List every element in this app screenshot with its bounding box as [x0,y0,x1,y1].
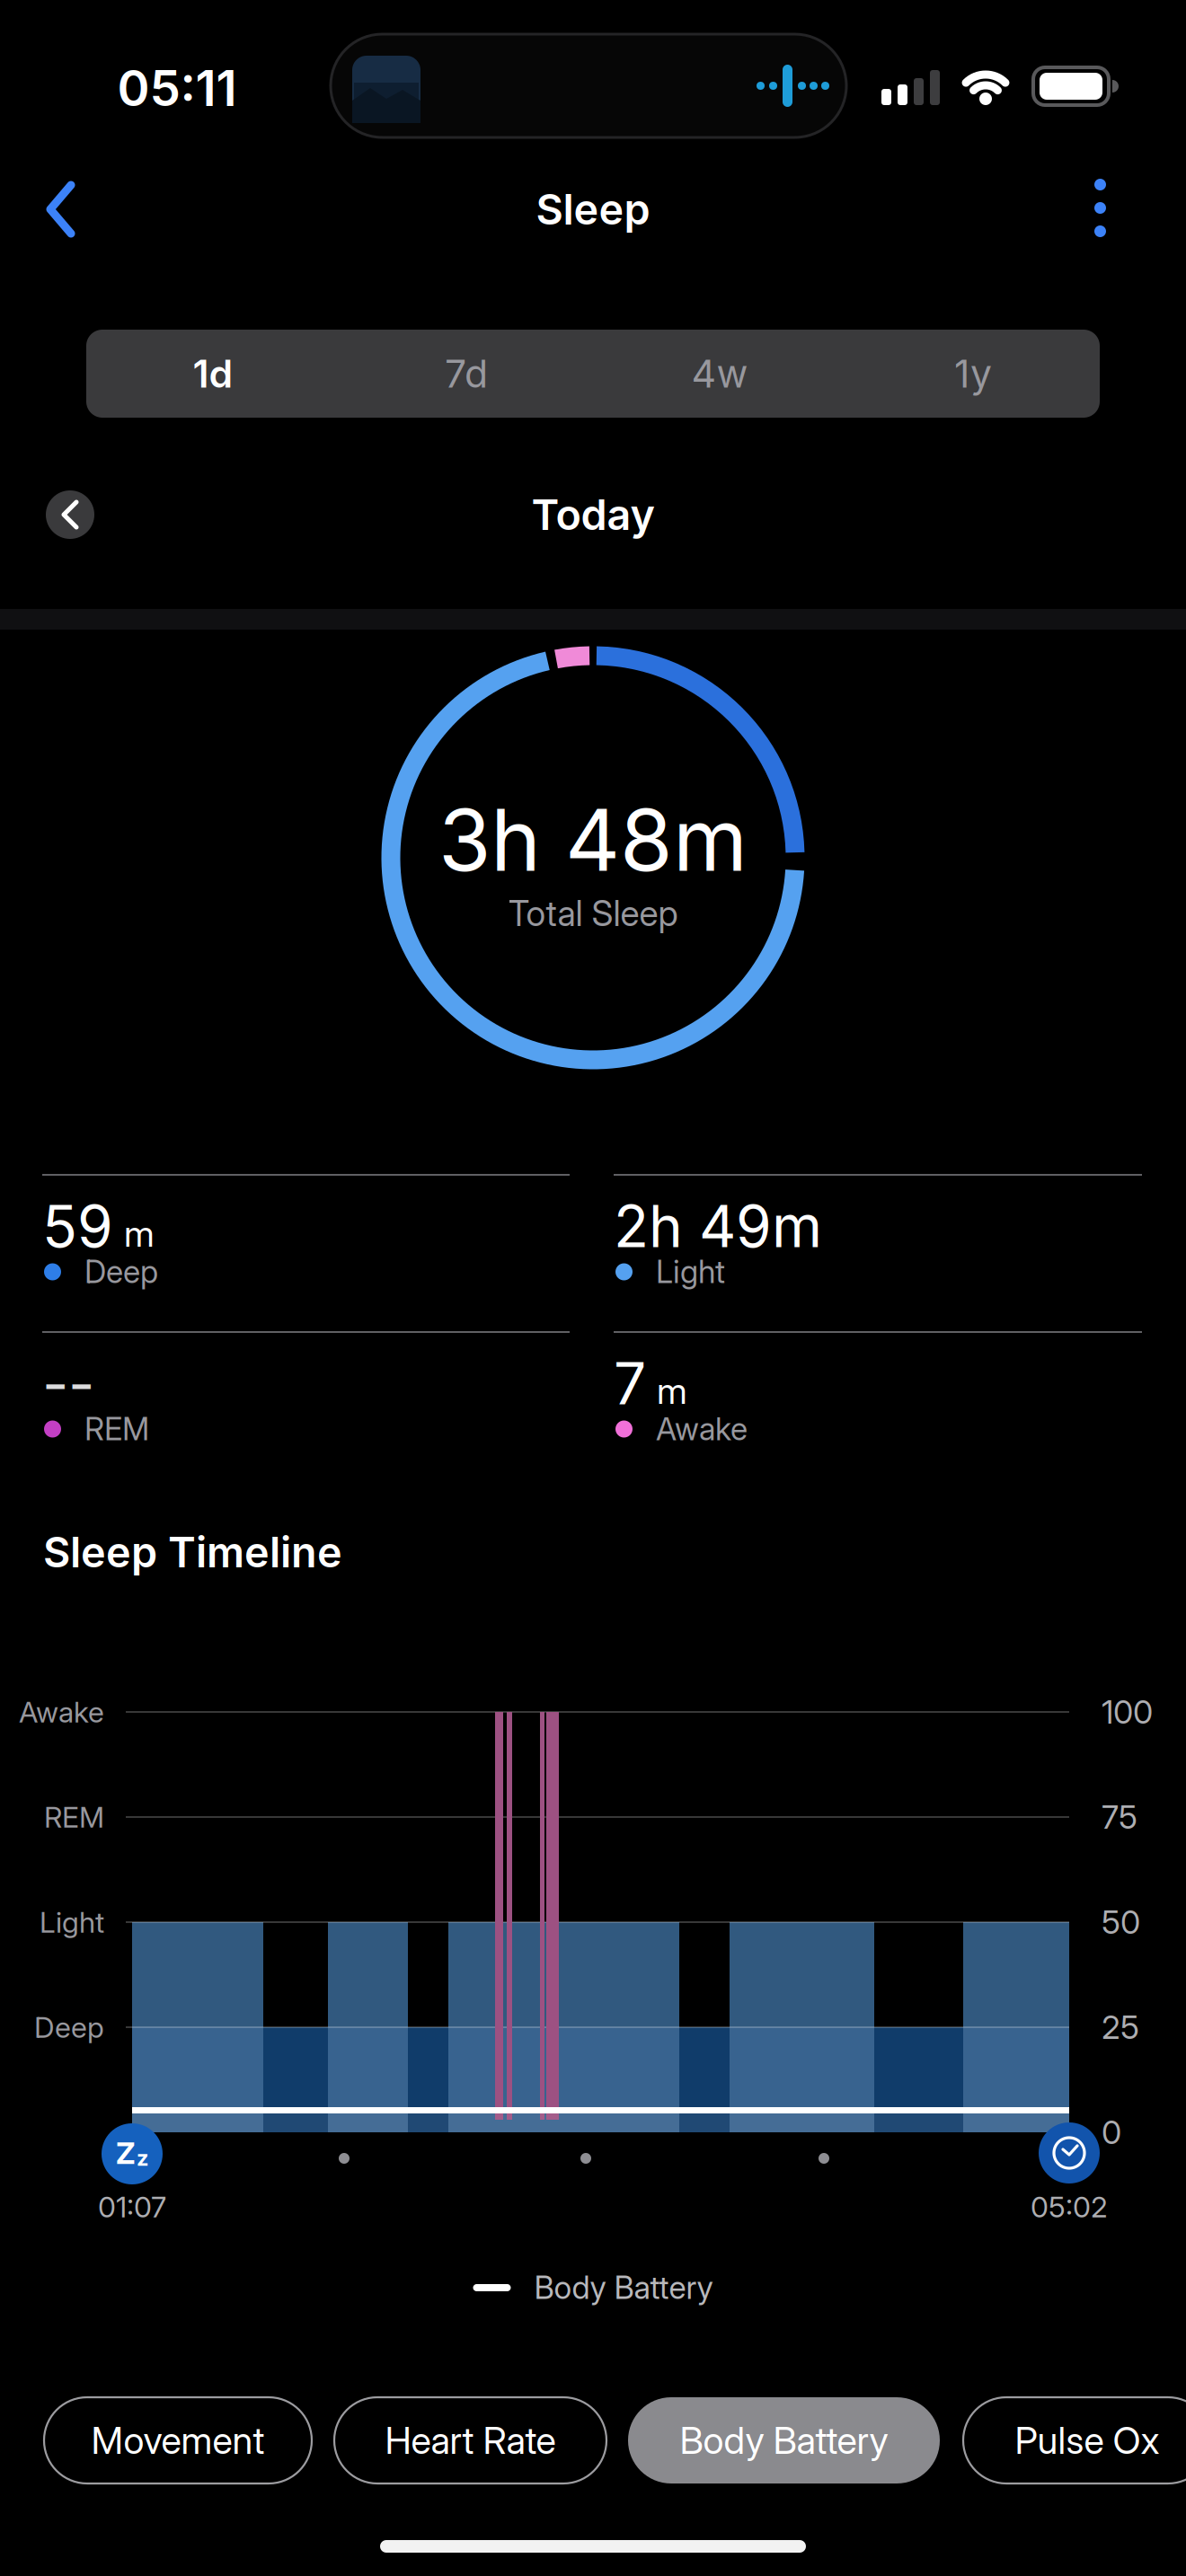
button[interactable]: 4w [0,0,253,88]
staticText: 3h 48m [438,790,748,890]
staticText: Light [656,1254,725,1290]
staticText: Movement [91,2418,265,2462]
button[interactable]: Body Battery [0,0,312,86]
staticText: m [124,1212,155,1255]
staticText: Awake [19,1695,104,1729]
staticText: Heart Rate [385,2418,556,2462]
staticText: 05:02 [1031,2190,1108,2224]
staticText: Today [531,490,655,539]
staticText: 05:11 [117,59,237,117]
staticText: 7 [614,1350,646,1417]
staticText: 0 [1102,2113,1121,2151]
staticText: -- [42,1350,94,1417]
staticText: 7d [445,351,488,396]
staticText: 2h 49m [614,1192,822,1260]
button[interactable]: 1d [0,0,253,88]
staticText: 50 [1102,1903,1140,1941]
staticText: 1d [193,351,233,396]
button[interactable]: 7d [0,0,253,88]
button[interactable]: 1y [0,0,253,88]
staticText: Deep [34,2010,104,2044]
staticText: 4w [691,351,748,396]
staticText: Sleep Timeline [43,1527,342,1577]
staticText: Awake [656,1411,748,1447]
button[interactable]: Pulse Ox [0,0,248,86]
staticText: Sleep [536,185,650,234]
staticText: Light [40,1905,104,1939]
staticText: Pulse Ox [1015,2418,1159,2462]
staticText: z [137,2145,148,2171]
button[interactable]: Movement [0,0,268,86]
staticText: 75 [1102,1798,1137,1836]
staticText: Deep [84,1254,158,1290]
staticText: Body Battery [680,2418,888,2462]
staticText: REM [44,1800,104,1834]
button[interactable]: Heart Rate [0,0,272,86]
staticText: 1y [954,351,992,396]
staticText: REM [84,1411,149,1447]
staticText: 25 [1102,2008,1139,2046]
staticText: 100 [1102,1693,1153,1731]
staticText: m [657,1370,687,1412]
staticText: Body Battery [534,2269,713,2306]
staticText: 59 [42,1192,113,1260]
staticText: 01:07 [98,2190,166,2224]
staticText: Total Sleep [508,893,678,934]
staticText: Z [116,2135,136,2171]
